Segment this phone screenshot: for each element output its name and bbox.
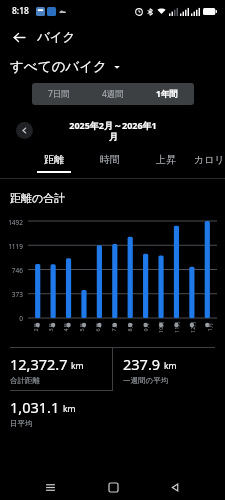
staticText: 距離の合計 <box>10 191 66 205</box>
button[interactable]: 7日間 <box>32 83 86 105</box>
staticText: 1月 <box>205 322 213 331</box>
staticText: 746 <box>11 266 23 275</box>
button[interactable]: Previous period <box>16 122 33 139</box>
staticText: 3月 <box>46 322 54 331</box>
staticText: 2025年2月～2026年1 <box>69 119 157 131</box>
staticText: 距離 <box>44 153 64 166</box>
staticText: 10月 <box>157 321 165 333</box>
staticText: km <box>164 360 177 372</box>
staticText: 7月 <box>109 322 117 331</box>
staticText: すべてのバイク <box>10 58 107 75</box>
staticText: 373 <box>11 290 23 299</box>
staticText: 4週間 <box>102 88 124 100</box>
staticText: 2月 <box>31 322 39 331</box>
staticText: 月 <box>109 131 118 142</box>
staticText: km <box>71 360 84 372</box>
staticText: 1492 <box>8 218 23 227</box>
staticText: km <box>63 403 76 415</box>
staticText: 日平均 <box>10 419 33 428</box>
button[interactable]: 上昇 <box>138 153 194 179</box>
staticText: 5月 <box>77 322 85 331</box>
staticText: 6月 <box>93 322 101 331</box>
staticText: 11月 <box>173 321 181 333</box>
staticText: 9月 <box>141 322 149 331</box>
staticText: 8月 <box>125 322 133 331</box>
button[interactable]: 1年間 <box>140 83 194 105</box>
staticText: 7日間 <box>48 88 70 100</box>
staticText: 1年間 <box>156 88 178 100</box>
button[interactable]: 距離 <box>26 153 82 179</box>
staticText: バイク <box>37 29 76 45</box>
button[interactable]: 時間 <box>82 153 138 179</box>
staticText: 一週間の平均 <box>123 376 169 385</box>
staticText: 1119 <box>8 242 23 251</box>
staticText: 12月 <box>189 321 197 333</box>
staticText: 合計距離 <box>10 376 40 385</box>
button[interactable]: カロリ <box>194 153 225 179</box>
staticText: 時間 <box>100 153 120 166</box>
button[interactable]: 4週間 <box>86 83 140 105</box>
button[interactable]: すべてのバイク <box>10 58 225 75</box>
staticText: 12,372.7 <box>10 354 68 374</box>
button[interactable]: Back <box>162 474 188 500</box>
staticText: カロリ <box>194 153 225 166</box>
staticText: 1,031.1 <box>10 397 60 417</box>
staticText: 上昇 <box>156 153 176 166</box>
staticText: 0 <box>19 314 23 323</box>
button[interactable]: Home <box>100 474 126 500</box>
button[interactable]: Recent apps <box>37 474 63 500</box>
staticText: 8:18 <box>12 5 29 17</box>
staticText: 4月 <box>61 322 69 331</box>
button[interactable]: Back <box>8 26 30 48</box>
staticText: 237.9 <box>123 354 161 374</box>
